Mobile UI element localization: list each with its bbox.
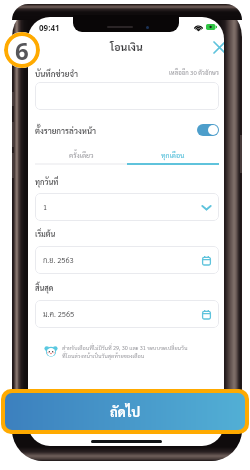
staticText: สำหรับเดือนที่ไม่มีวันที่ 29, 30 และ 31 … xyxy=(62,344,188,351)
staticText: 6 xyxy=(15,34,29,67)
staticText: โอนเงิน xyxy=(110,40,143,54)
staticText: ทุกเดือน xyxy=(161,151,185,160)
staticText: ม.ค. 2565 xyxy=(43,309,75,319)
staticText: เริ่มต้น xyxy=(35,229,56,239)
button[interactable]: Toggle scheduled transfer xyxy=(197,124,219,136)
button[interactable]: ถัดไป xyxy=(5,393,245,430)
staticText: สิ้นสุด xyxy=(35,283,54,293)
staticText: ตั้งรายการล่วงหน้า xyxy=(35,125,97,135)
staticText: เหลืออีก 30 ตัวอักษร xyxy=(169,69,219,77)
button[interactable]: Close xyxy=(210,38,224,56)
staticText: ทุกวันที่ xyxy=(35,177,59,187)
staticText: 1 xyxy=(43,202,48,212)
staticText: ถัดไป xyxy=(110,403,141,420)
staticText: ที่โอนล่วงหน้าเป็นวันสุดท้ายของเดือน xyxy=(62,352,145,359)
button[interactable]: ก.ย. 2563 xyxy=(35,246,219,274)
button[interactable]: Memo xyxy=(35,82,219,110)
button[interactable]: ครั้งเดียว xyxy=(35,148,127,163)
button[interactable]: ม.ค. 2565 xyxy=(35,300,219,328)
staticText: ครั้งเดียว xyxy=(69,151,94,160)
staticText: 09:41 xyxy=(39,22,60,33)
button[interactable]: ทุกเดือน xyxy=(127,148,219,163)
button[interactable]: 1 xyxy=(35,193,219,221)
staticText: ก.ย. 2563 xyxy=(43,255,74,265)
staticText: บันทึกช่วยจำ xyxy=(35,68,78,78)
